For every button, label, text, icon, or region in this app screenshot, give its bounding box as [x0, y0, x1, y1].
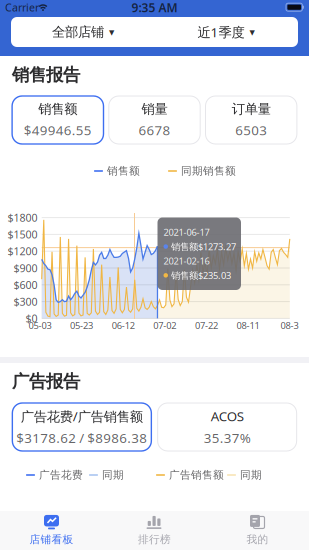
- button[interactable]: 近1季度: [154, 17, 297, 47]
- staticText: 08-11: [236, 319, 259, 332]
- staticText: $1800: [7, 210, 37, 225]
- staticText: 同期: [240, 468, 262, 481]
- staticText: Carrier: [5, 0, 39, 14]
- staticText: $300: [13, 294, 37, 309]
- staticText: 07-02: [153, 319, 176, 332]
- staticText: 同期销售额: [181, 164, 236, 177]
- button[interactable]: 订单量: [205, 96, 297, 144]
- staticText: 销售额$235.03: [171, 269, 231, 281]
- staticText: 2021-06-17: [163, 226, 209, 238]
- button[interactable]: ACOS: [158, 403, 297, 451]
- staticText: 销售额: [107, 164, 140, 177]
- button[interactable]: 广告花费/广告销售额: [12, 403, 151, 451]
- staticText: 销售额$1273.27: [171, 240, 236, 253]
- staticText: 销售报告: [12, 64, 80, 86]
- button[interactable]: 销售额: [12, 96, 103, 144]
- staticText: $900: [13, 261, 37, 275]
- staticText: ▾: [249, 26, 254, 38]
- staticText: 同期: [102, 468, 124, 481]
- staticText: 06-12: [112, 319, 135, 332]
- staticText: 广告花费/广告销售额: [21, 407, 143, 425]
- staticText: 店铺看板: [29, 533, 73, 546]
- staticText: $49946.55: [24, 121, 92, 139]
- staticText: 销量: [141, 101, 167, 117]
- staticText: $3178.62 / $8986.38: [16, 429, 147, 447]
- staticText: 广告报告: [12, 371, 80, 392]
- staticText: $1200: [7, 244, 37, 258]
- staticText: 6678: [138, 121, 170, 139]
- staticText: $0: [25, 311, 37, 325]
- button[interactable]: 全部店铺: [11, 17, 154, 47]
- staticText: 全部店铺: [52, 24, 104, 40]
- button[interactable]: 店铺看板: [0, 511, 103, 550]
- button[interactable]: 销量: [109, 96, 200, 144]
- staticText: 05-23: [70, 319, 93, 332]
- staticText: 05-03: [28, 319, 51, 332]
- staticText: 35.37%: [204, 429, 251, 447]
- staticText: $600: [13, 278, 37, 292]
- staticText: 9:35 AM: [131, 0, 177, 15]
- staticText: 2021-02-16: [163, 255, 209, 267]
- staticText: 广告销售额: [169, 468, 224, 481]
- button[interactable]: 我的: [206, 511, 309, 550]
- staticText: 销售额: [38, 101, 77, 117]
- staticText: 我的: [246, 533, 268, 546]
- staticText: 广告花费: [39, 468, 83, 481]
- staticText: 近1季度: [197, 23, 244, 41]
- staticText: 6503: [235, 121, 267, 139]
- staticText: $1500: [7, 227, 37, 241]
- button[interactable]: 排行榜: [103, 511, 206, 550]
- staticText: ACOS: [211, 407, 244, 425]
- staticText: 07-22: [195, 319, 218, 332]
- staticText: 排行榜: [138, 533, 171, 546]
- staticText: 08-3: [281, 319, 299, 332]
- staticText: 订单量: [232, 101, 271, 117]
- staticText: ▾: [109, 26, 114, 38]
